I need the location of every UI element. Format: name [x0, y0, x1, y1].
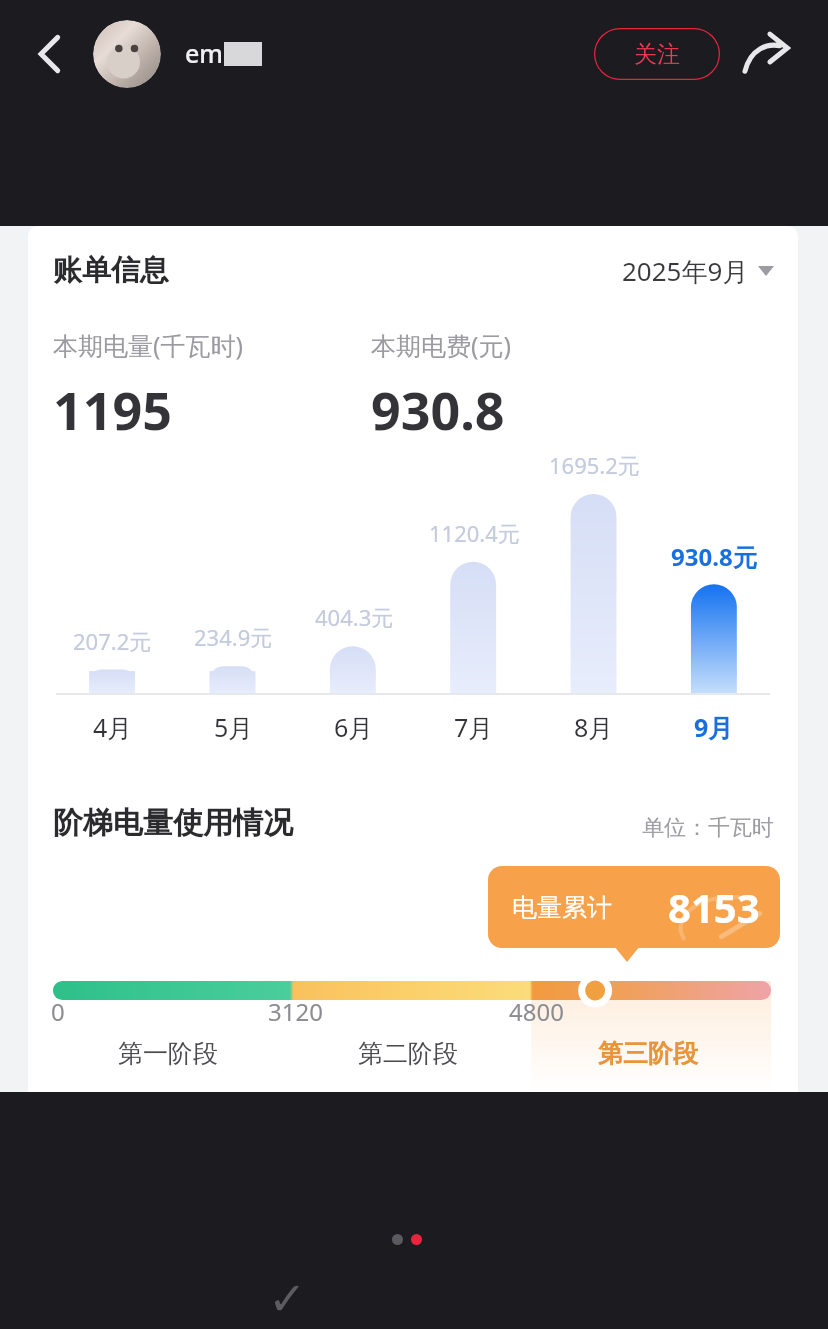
staticText: 0: [51, 995, 65, 1028]
staticText: 1695.2元: [549, 450, 640, 480]
staticText: 第三阶段: [598, 1038, 698, 1069]
staticText: 2025年9月: [622, 253, 749, 289]
staticText: 4800: [509, 995, 564, 1028]
button[interactable]: em: [185, 36, 262, 70]
staticText: 账单信息: [53, 252, 169, 289]
staticText: 930.8: [371, 374, 505, 445]
staticText: 第一阶段: [118, 1038, 218, 1069]
staticText: 1120.4元: [429, 518, 520, 548]
button[interactable]: 电量累计: [488, 866, 780, 948]
staticText: 7月: [454, 710, 494, 744]
staticText: 3120: [268, 995, 323, 1028]
staticText: 234.9元: [194, 622, 273, 652]
staticText: 1195: [53, 374, 172, 445]
staticText: 9月: [694, 710, 734, 744]
staticText: 本期电费(元): [371, 328, 512, 362]
staticText: 8月: [574, 710, 614, 744]
staticText: 4月: [93, 710, 133, 744]
staticText: 930.8元: [671, 540, 757, 573]
staticText: 404.3元: [315, 602, 394, 632]
button[interactable]: 2025年9月: [622, 253, 774, 289]
button[interactable]: Profile avatar: [93, 20, 161, 88]
staticText: 本期电量(千瓦时): [53, 328, 244, 362]
button[interactable]: [392, 1234, 403, 1245]
staticText: 阶梯电量使用情况: [53, 804, 293, 842]
staticText: 8153: [668, 880, 760, 934]
button[interactable]: 关注: [594, 28, 720, 80]
button[interactable]: [411, 1234, 422, 1245]
button[interactable]: Share: [738, 26, 796, 84]
button[interactable]: Back: [18, 22, 82, 86]
staticText: ✓: [268, 1272, 307, 1326]
staticText: 207.2元: [73, 626, 152, 656]
staticText: 单位：千瓦时: [642, 814, 774, 842]
staticText: 电量累计: [512, 892, 612, 923]
staticText: 6月: [334, 710, 374, 744]
staticText: 5月: [214, 710, 254, 744]
staticText: 第二阶段: [358, 1038, 458, 1069]
staticText: 关注: [634, 40, 680, 69]
staticText: em: [185, 36, 224, 70]
